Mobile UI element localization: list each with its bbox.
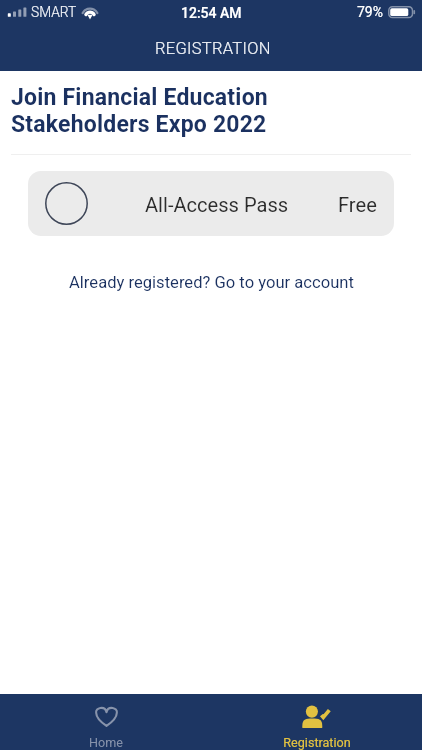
staticText: Free <box>338 193 377 217</box>
button[interactable]: Already registered? Go to your account <box>65 271 358 294</box>
staticText: SMART <box>31 4 77 20</box>
button[interactable]: Select All-Access Pass <box>28 171 394 236</box>
button[interactable]: Home <box>0 694 211 750</box>
staticText: Registration <box>283 735 351 750</box>
staticText: 79% <box>357 4 383 20</box>
staticText: REGISTRATION <box>155 39 271 58</box>
staticText: Home <box>89 735 123 750</box>
button[interactable]: Registration <box>211 694 422 750</box>
other: Select All-Access Pass <box>45 182 88 225</box>
staticText: Join Financial Education Stakeholders Ex… <box>11 84 268 137</box>
staticText: 12:54 AM <box>181 5 242 21</box>
staticText: All-Access Pass <box>145 193 289 217</box>
